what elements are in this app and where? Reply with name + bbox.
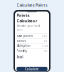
staticText: Multiplier bbox=[16, 44, 30, 48]
staticText: 1.5x bbox=[41, 44, 47, 48]
staticText: Total bbox=[16, 55, 23, 59]
staticText: 120 bbox=[41, 34, 47, 38]
staticText: Base points bbox=[16, 34, 32, 38]
staticText: Calculate bbox=[25, 67, 39, 71]
button[interactable]: Calculate bbox=[16, 67, 47, 71]
staticText: Points Calculator bbox=[16, 13, 37, 23]
staticText: Penalty bbox=[16, 49, 26, 53]
staticText: Bonus bbox=[16, 39, 25, 43]
staticText: Estimate your total score bbox=[16, 24, 40, 31]
staticText: -10 bbox=[42, 49, 47, 53]
staticText: 35 bbox=[43, 39, 47, 43]
staticText: Calculate Points bbox=[16, 2, 47, 8]
